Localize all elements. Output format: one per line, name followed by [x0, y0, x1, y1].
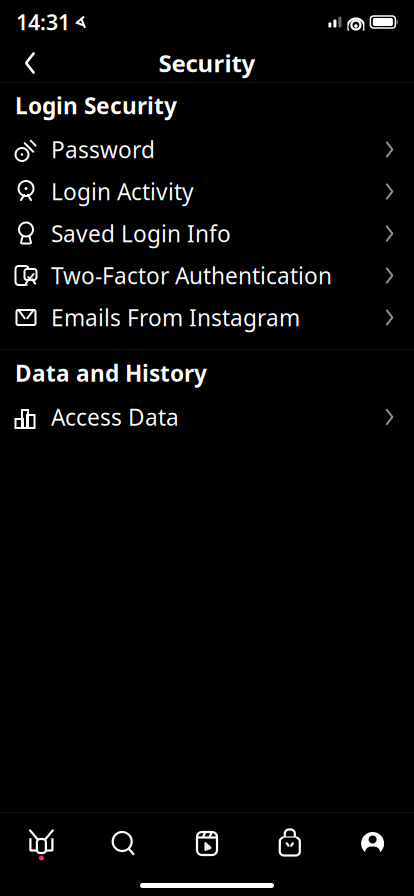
- button[interactable]: Search: [83, 818, 166, 868]
- button[interactable]: Back: [8, 41, 52, 85]
- staticText: Saved Login Info: [51, 218, 231, 248]
- staticText: Password: [51, 134, 155, 164]
- staticText: Two-Factor Authentication: [51, 260, 332, 290]
- staticText: Security: [158, 47, 255, 79]
- button[interactable]: Access Data: [0, 396, 414, 438]
- staticText: Login Activity: [51, 176, 194, 206]
- staticText: 14:31: [16, 8, 70, 36]
- button[interactable]: Emails From Instagram: [0, 296, 414, 338]
- staticText: Data and History: [15, 358, 207, 388]
- staticText: Login Security: [15, 90, 177, 120]
- staticText: Access Data: [51, 402, 179, 432]
- button[interactable]: Home: [0, 818, 83, 868]
- button[interactable]: Two-Factor Authentication: [0, 254, 414, 296]
- button[interactable]: Password: [0, 128, 414, 170]
- button[interactable]: Login Activity: [0, 170, 414, 212]
- button[interactable]: Profile: [331, 818, 414, 868]
- button[interactable]: Shop: [248, 818, 331, 868]
- button[interactable]: Reels: [166, 818, 248, 868]
- button[interactable]: Saved Login Info: [0, 212, 414, 254]
- staticText: Emails From Instagram: [51, 302, 300, 332]
